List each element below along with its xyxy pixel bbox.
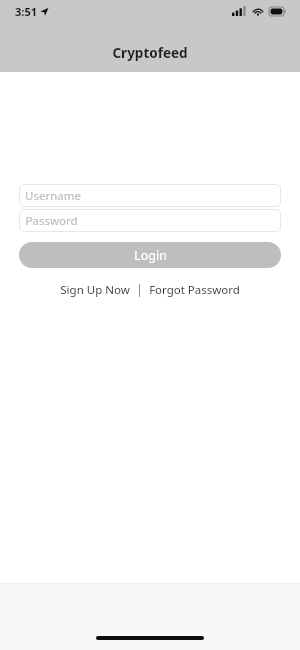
staticText: Password [25,213,78,229]
staticText: 3:51 [15,4,37,19]
button[interactable]: Forgot Password [147,280,242,300]
staticText: Sign Up Now [60,282,130,298]
button[interactable]: Password [19,209,281,232]
staticText: Username [25,188,81,204]
staticText: Forgot Password [149,282,240,298]
button[interactable]: Sign Up Now [58,280,132,300]
button[interactable]: Username [19,184,281,207]
staticText: Login [134,247,167,264]
staticText: Cryptofeed [112,44,188,62]
button[interactable]: Login [19,242,281,268]
